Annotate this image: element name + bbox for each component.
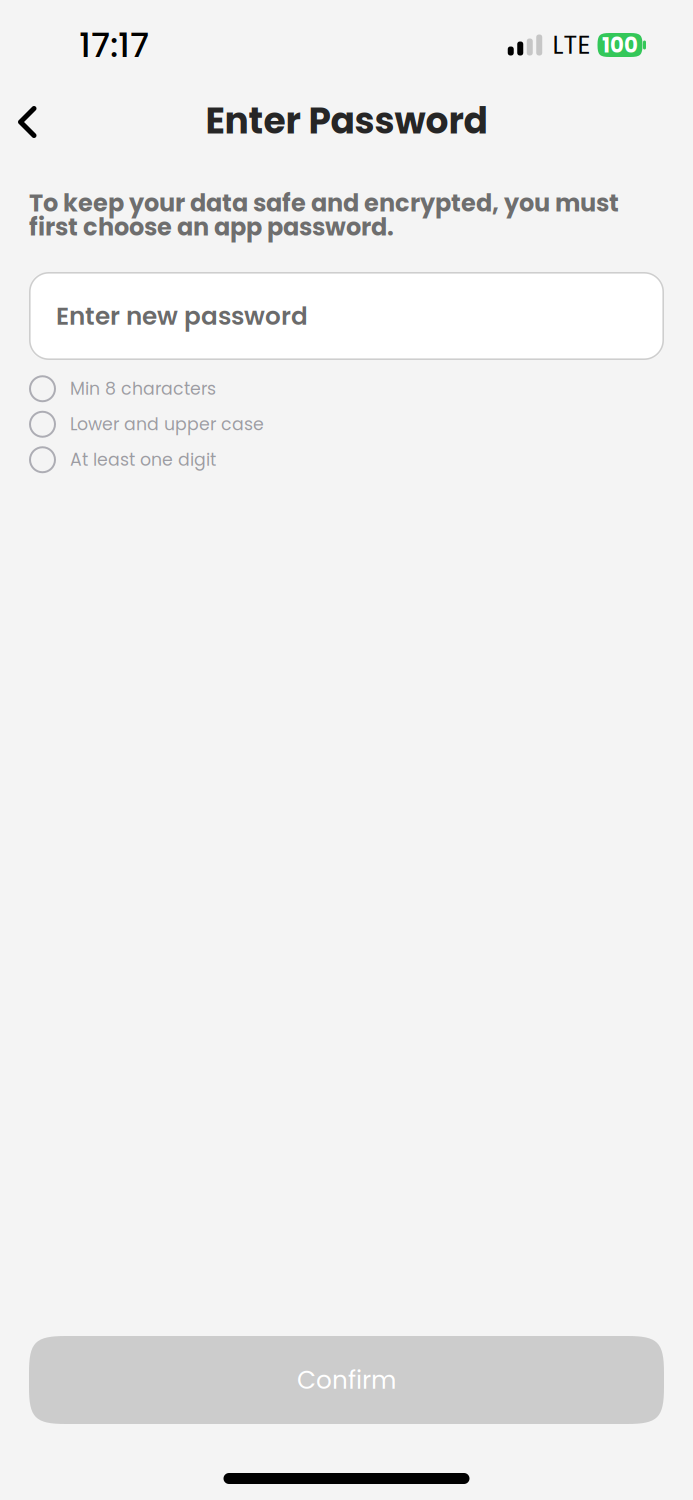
staticText: 17:17 bbox=[79, 21, 149, 69]
staticText: 100 bbox=[602, 30, 638, 60]
staticText: Enter new password bbox=[56, 299, 308, 333]
staticText: Lower and upper case bbox=[70, 412, 264, 436]
staticText: Min 8 characters bbox=[70, 377, 216, 401]
button[interactable]: Back bbox=[0, 77, 61, 146]
staticText: To keep your data safe and encrypted, yo… bbox=[29, 186, 619, 220]
staticText: LTE bbox=[552, 27, 590, 63]
staticText: first choose an app password. bbox=[29, 210, 394, 244]
staticText: Enter Password bbox=[205, 96, 487, 146]
staticText: At least one digit bbox=[70, 448, 216, 472]
button[interactable]: Confirm bbox=[29, 1336, 664, 1424]
staticText: Confirm bbox=[297, 1363, 396, 1397]
button[interactable]: Enter new password bbox=[29, 272, 664, 360]
